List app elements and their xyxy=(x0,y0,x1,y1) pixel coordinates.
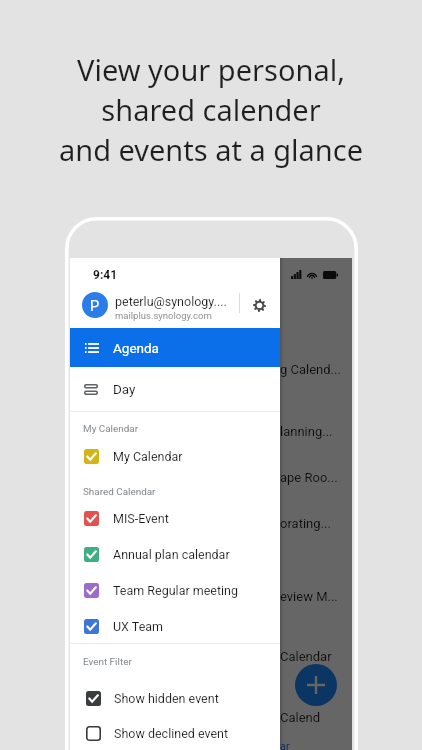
staticText: g Calend... xyxy=(280,362,341,377)
staticText: eview M... xyxy=(280,589,338,604)
button[interactable]: My Calendar xyxy=(70,440,280,472)
button[interactable]: Create event xyxy=(295,664,337,706)
button[interactable]: Settings xyxy=(243,289,275,321)
staticText: Day xyxy=(113,381,136,397)
staticText: Calend xyxy=(280,710,321,725)
button[interactable]: Team Regular meeting xyxy=(70,574,280,606)
button[interactable]: Annual plan calendar xyxy=(70,538,280,570)
staticText: ar xyxy=(280,740,290,750)
staticText: orating... xyxy=(280,516,331,531)
button[interactable]: Day xyxy=(70,369,280,409)
button[interactable]: Show hidden event xyxy=(70,682,280,714)
staticText: lanning... xyxy=(280,424,333,439)
button[interactable]: UX Team xyxy=(70,610,280,642)
staticText: My Calendar xyxy=(113,449,183,464)
staticText: My Calendar xyxy=(83,423,139,435)
staticText: Agenda xyxy=(113,340,159,356)
staticText: peterlu@synology.... xyxy=(115,294,227,309)
staticText: ape Roo... xyxy=(280,470,338,485)
button[interactable]: Show declined event xyxy=(70,717,280,749)
staticText: Show declined event xyxy=(114,726,229,741)
staticText: P xyxy=(90,297,100,314)
staticText: Annual plan calendar xyxy=(113,547,230,562)
staticText: UX Team xyxy=(113,619,164,634)
staticText: 9:41 xyxy=(93,268,118,282)
staticText: mailplus.synology.com xyxy=(115,310,212,321)
staticText: Shared Calendar xyxy=(83,486,156,498)
staticText: Show hidden event xyxy=(114,691,219,706)
staticText: Team Regular meeting xyxy=(113,583,239,598)
button[interactable]: P xyxy=(70,283,280,327)
staticText: MIS-Event xyxy=(113,511,169,526)
staticText: Calendar xyxy=(280,649,332,664)
staticText: Event Filter xyxy=(83,656,132,668)
button[interactable]: Agenda xyxy=(70,328,280,367)
button[interactable]: MIS-Event xyxy=(70,502,280,534)
staticText: View your personal, shared calender and … xyxy=(0,50,422,170)
